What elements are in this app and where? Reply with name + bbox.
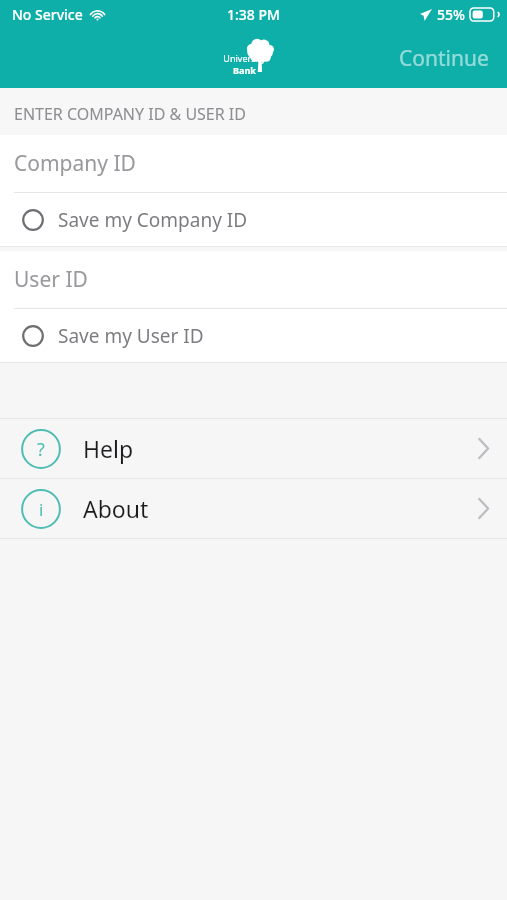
- button[interactable]: Save my Company ID: [0, 193, 507, 246]
- staticText: Save my User ID: [58, 323, 204, 349]
- button[interactable]: Save my User ID: [0, 309, 507, 362]
- staticText: ?: [37, 437, 45, 462]
- button[interactable]: ?: [0, 419, 507, 478]
- staticText: 55%: [437, 5, 465, 24]
- staticText: University: [223, 52, 266, 64]
- staticText: Bank: [233, 64, 256, 76]
- staticText: Company ID: [14, 149, 136, 178]
- button[interactable]: User ID: [0, 251, 507, 308]
- button[interactable]: Company ID: [0, 135, 507, 192]
- staticText: ENTER COMPANY ID & USER ID: [14, 103, 246, 125]
- staticText: About: [83, 493, 149, 524]
- button[interactable]: Continue: [381, 34, 507, 83]
- staticText: Continue: [399, 44, 489, 73]
- staticText: User ID: [14, 265, 88, 294]
- staticText: 1:38 PM: [227, 5, 280, 24]
- staticText: No Service: [12, 5, 83, 24]
- button[interactable]: i: [0, 479, 507, 538]
- staticText: Help: [83, 433, 134, 464]
- staticText: i: [39, 498, 44, 521]
- staticText: Save my Company ID: [58, 207, 248, 233]
